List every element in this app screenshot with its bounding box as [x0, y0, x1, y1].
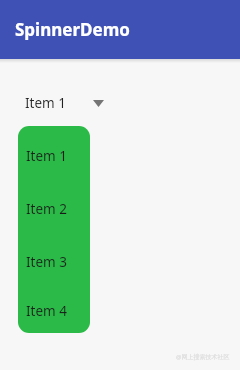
button[interactable]: Item 4 [18, 288, 90, 333]
button[interactable]: Item 1 [18, 91, 108, 115]
staticText: Item 3 [26, 253, 67, 271]
other: Open dropdown [93, 100, 104, 107]
staticText: @网上搜索技术社区 [176, 353, 230, 361]
button[interactable]: Item 2 [18, 182, 90, 235]
staticText: Item 1 [26, 147, 67, 165]
staticText: Item 4 [26, 302, 67, 320]
staticText: Item 2 [26, 200, 67, 218]
button[interactable]: Item 1 [18, 129, 90, 182]
staticText: Item 1 [25, 94, 66, 112]
button[interactable]: Item 3 [18, 235, 90, 288]
staticText: SpinnerDemo [15, 18, 130, 41]
